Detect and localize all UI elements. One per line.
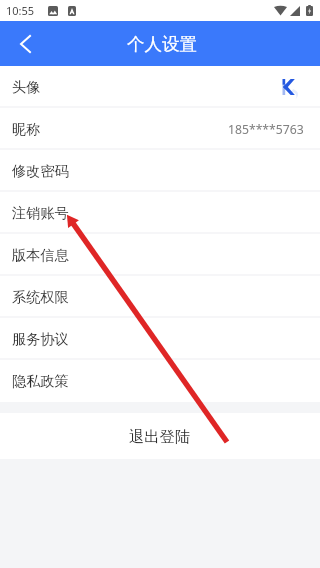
button[interactable]: 头像: [0, 66, 320, 108]
staticText: 185****5763: [228, 121, 304, 138]
button[interactable]: 退出登陆: [0, 413, 320, 459]
button[interactable]: 修改密码: [0, 150, 320, 192]
button[interactable]: 系统权限: [0, 276, 320, 318]
staticText: 退出登陆: [129, 427, 191, 446]
staticText: 隐私政策: [12, 372, 69, 390]
staticText: 服务协议: [12, 330, 69, 348]
button[interactable]: 隐私政策: [0, 360, 320, 402]
button[interactable]: 注销账号: [0, 192, 320, 234]
staticText: 修改密码: [12, 162, 69, 180]
button[interactable]: 昵称: [0, 108, 320, 150]
staticText: 昵称: [12, 120, 41, 138]
staticText: 注销账号: [12, 204, 69, 222]
button[interactable]: 服务协议: [0, 318, 320, 360]
staticText: 系统权限: [12, 288, 69, 306]
staticText: 个人设置: [127, 33, 197, 55]
staticText: 版本信息: [12, 246, 69, 264]
button[interactable]: Back: [0, 21, 42, 66]
button[interactable]: 版本信息: [0, 234, 320, 276]
staticText: 头像: [12, 78, 41, 96]
staticText: 10:55: [6, 3, 35, 18]
